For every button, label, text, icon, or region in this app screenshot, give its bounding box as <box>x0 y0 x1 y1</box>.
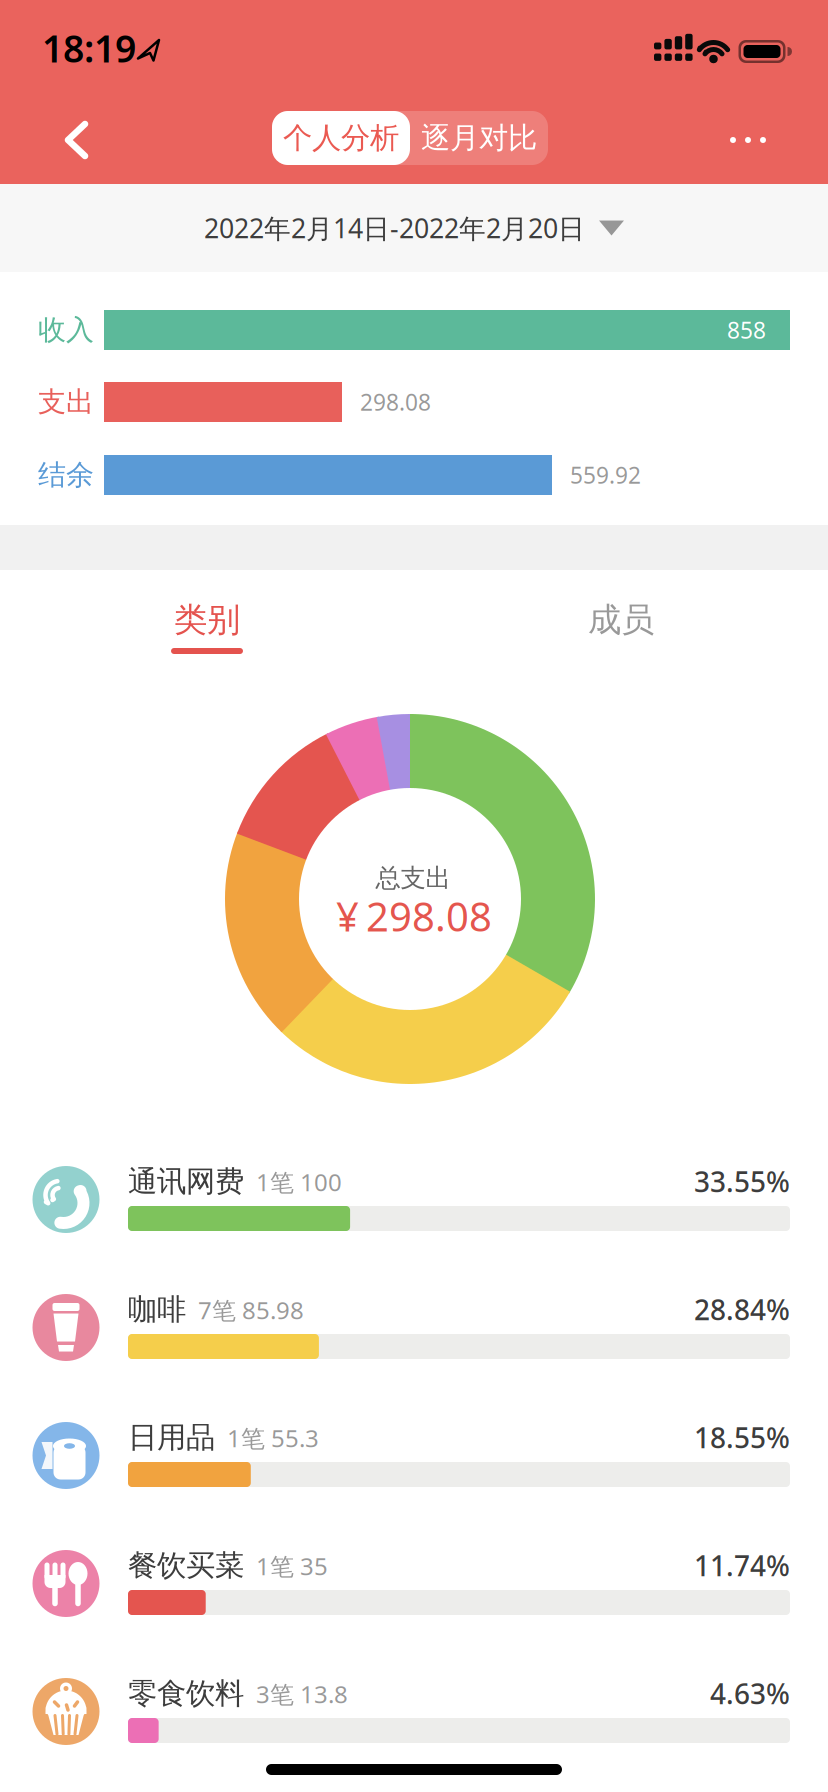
button[interactable]: 餐饮买菜 <box>0 1519 828 1647</box>
staticText: 餐饮买菜 <box>128 1547 244 1583</box>
staticText: 2022年2月14日-2022年2月20日 <box>204 210 585 246</box>
staticText: 559.92 <box>570 460 641 490</box>
staticText: 1笔 35 <box>256 1550 328 1582</box>
staticText: 18.55% <box>694 1419 790 1456</box>
button[interactable]: 日用品 <box>0 1391 828 1519</box>
staticText: 收入 <box>38 313 94 347</box>
staticText: 通讯网费 <box>128 1163 244 1199</box>
button[interactable]: More <box>718 118 778 162</box>
staticText: 33.55% <box>694 1163 790 1200</box>
button[interactable]: 逐月对比 <box>410 111 548 165</box>
button[interactable]: 2022年2月14日-2022年2月20日 <box>204 210 624 246</box>
staticText: 日用品 <box>128 1419 215 1455</box>
staticText: 类别 <box>174 599 240 640</box>
staticText: 零食饮料 <box>128 1675 244 1711</box>
staticText: 总支出 <box>375 862 450 893</box>
button[interactable]: 咖啡 <box>0 1263 828 1391</box>
staticText: 逐月对比 <box>421 120 537 156</box>
staticText: 咖啡 <box>128 1291 186 1327</box>
button[interactable]: 个人分析 <box>272 111 410 165</box>
staticText: 18:19 <box>42 23 136 73</box>
staticText: 858 <box>727 315 766 345</box>
staticText: 支出 <box>38 385 94 419</box>
staticText: 结余 <box>38 458 94 492</box>
staticText: 298.08 <box>360 387 431 417</box>
button[interactable]: 零食饮料 <box>0 1647 828 1775</box>
button[interactable]: Back <box>46 110 106 170</box>
button[interactable]: 成员 <box>521 590 721 650</box>
staticText: 1笔 55.3 <box>227 1422 319 1454</box>
staticText: 28.84% <box>694 1291 790 1328</box>
staticText: 1笔 100 <box>256 1166 342 1198</box>
staticText: ¥ 298.08 <box>336 889 492 942</box>
staticText: 7笔 85.98 <box>198 1294 304 1326</box>
staticText: 个人分析 <box>283 120 399 156</box>
button[interactable]: 通讯网费 <box>0 1135 828 1263</box>
staticText: 4.63% <box>710 1675 790 1712</box>
staticText: 3笔 13.8 <box>256 1678 348 1710</box>
staticText: 11.74% <box>694 1547 790 1584</box>
staticText: 成员 <box>588 599 654 640</box>
button[interactable]: 类别 <box>107 590 307 650</box>
